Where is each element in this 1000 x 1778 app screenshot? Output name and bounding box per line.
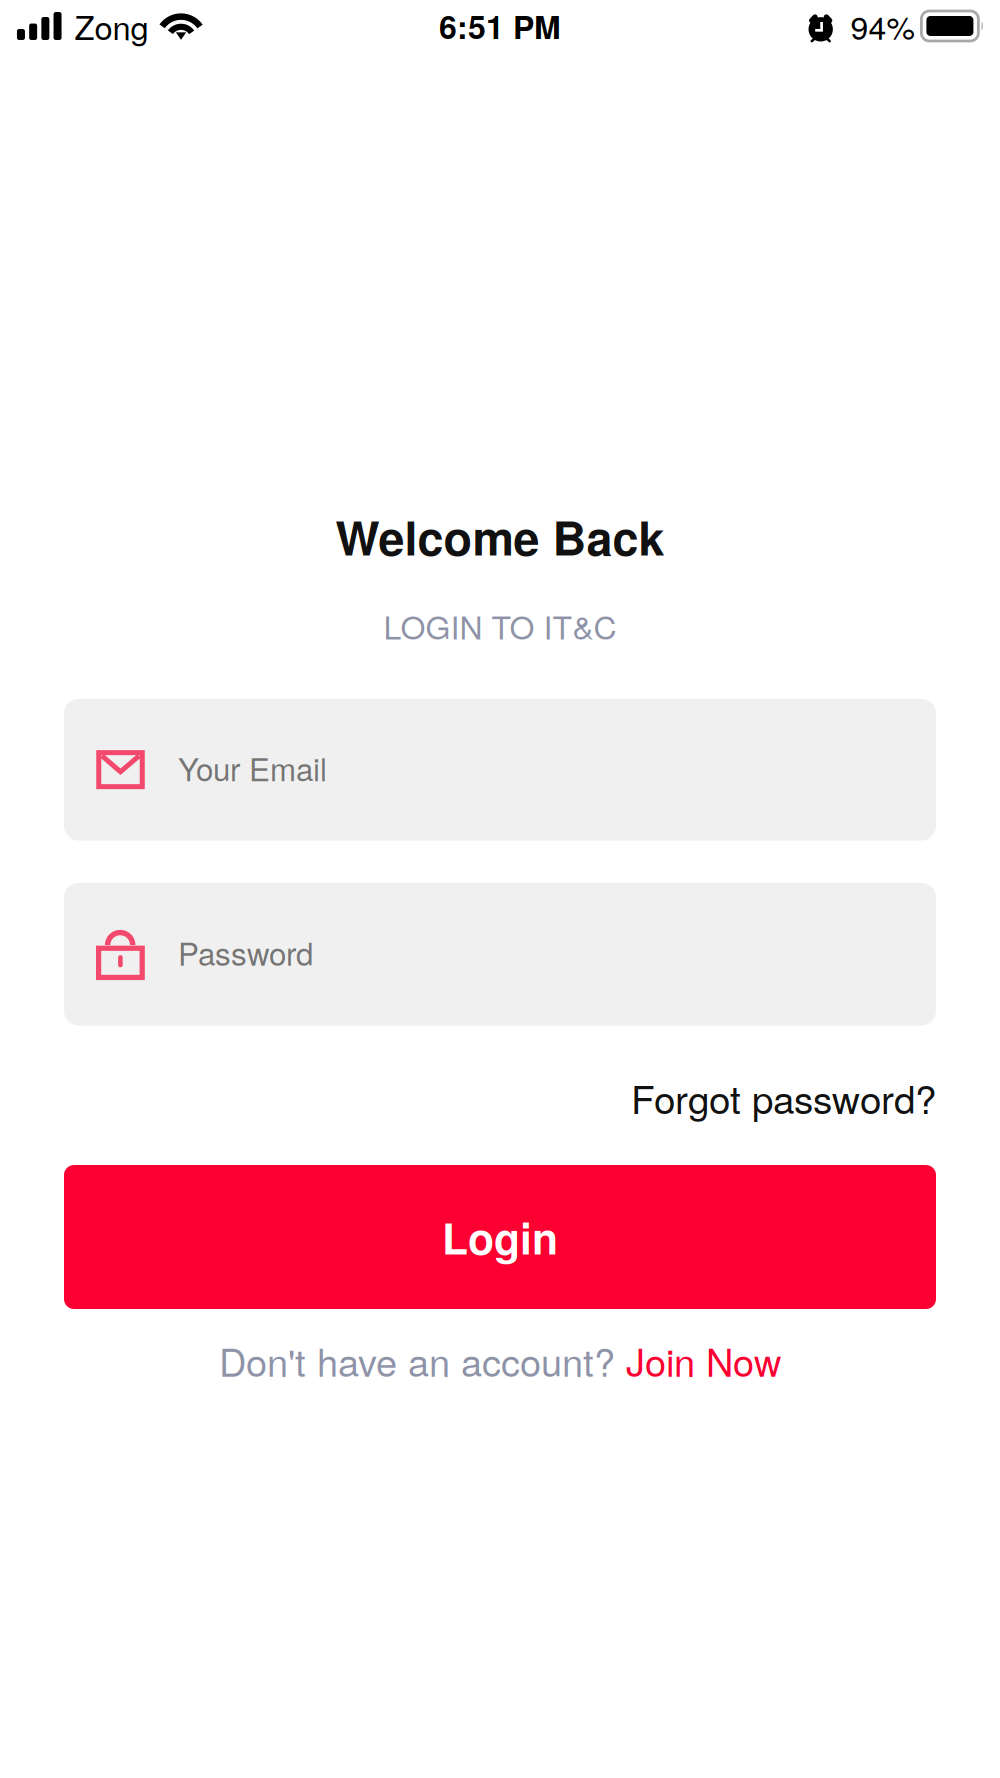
staticText: Login (442, 1206, 558, 1268)
button[interactable]: Your Email (64, 699, 936, 841)
staticText: Forgot password? (631, 1070, 936, 1125)
staticText: 6:51 PM (439, 3, 561, 49)
staticText: Don't have an account? (219, 1333, 626, 1387)
staticText: Your Email (178, 745, 327, 790)
button[interactable]: Login (64, 1165, 936, 1309)
staticText: Zong (74, 3, 148, 49)
staticText: Welcome Back (335, 503, 664, 570)
button[interactable]: Join Now (626, 1333, 781, 1387)
button[interactable]: Password (64, 883, 936, 1026)
staticText: LOGIN TO IT&C (383, 603, 616, 649)
staticText: Password (178, 930, 313, 975)
button[interactable]: Forgot password? (631, 1070, 936, 1125)
staticText: 94% (850, 3, 914, 49)
staticText: Join Now (626, 1333, 781, 1387)
